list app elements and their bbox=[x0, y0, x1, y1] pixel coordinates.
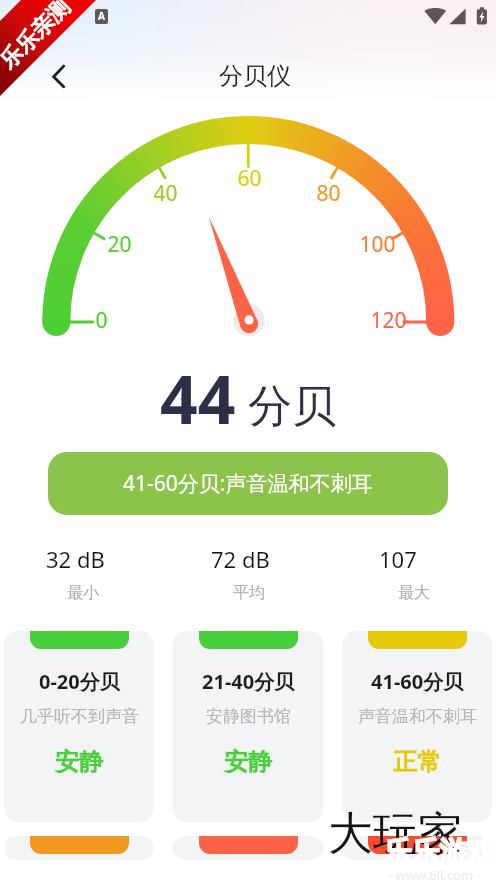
staticText: 安静 bbox=[55, 747, 103, 777]
staticText: 80 bbox=[316, 179, 341, 208]
staticText: 最小 bbox=[67, 583, 99, 603]
staticText: 大玩家 bbox=[328, 806, 463, 863]
button[interactable]: 21-40分贝 bbox=[173, 631, 323, 822]
button[interactable]: 81-100分贝 bbox=[173, 836, 323, 860]
staticText: 安静图书馆 bbox=[206, 706, 291, 727]
button[interactable]: 61-80分贝 bbox=[4, 836, 154, 860]
staticText: 60 bbox=[237, 164, 262, 193]
staticText: 107 bbox=[379, 544, 417, 574]
staticText: - www.6ll.com - bbox=[388, 866, 481, 883]
button[interactable]: 41-60分贝:声音温和不刺耳 bbox=[48, 452, 448, 515]
staticText: 41-60分贝:声音温和不刺耳 bbox=[123, 469, 373, 498]
button[interactable]: 0-20分贝 bbox=[4, 631, 154, 822]
staticText: 0 bbox=[95, 306, 108, 335]
staticText: 72 dB bbox=[211, 544, 270, 574]
staticText: 20 bbox=[107, 230, 132, 259]
staticText: 40 bbox=[153, 179, 178, 208]
staticText: 平均 bbox=[233, 583, 265, 603]
staticText: 41-60分贝 bbox=[371, 668, 464, 695]
staticText: 最大 bbox=[398, 583, 430, 603]
staticText: 分贝仪 bbox=[219, 61, 291, 91]
staticText: A bbox=[98, 9, 105, 23]
staticText: 44 bbox=[160, 353, 236, 443]
staticText: 100 bbox=[359, 230, 396, 259]
button[interactable]: Back bbox=[40, 52, 88, 100]
button[interactable]: 41-60分贝 bbox=[342, 631, 492, 822]
staticText: 21-40分贝 bbox=[202, 668, 295, 695]
staticText: 分贝 bbox=[248, 379, 336, 434]
staticText: 乐乐游戏 bbox=[383, 834, 495, 869]
staticText: 正常 bbox=[393, 747, 441, 777]
staticText: 安静 bbox=[224, 747, 272, 777]
staticText: 0-20分贝 bbox=[39, 668, 120, 695]
staticText: 120 bbox=[370, 306, 407, 335]
staticText: 乐乐游戏 bbox=[383, 834, 495, 869]
staticText: 几乎听不到声音 bbox=[20, 706, 139, 727]
staticText: 声音温和不刺耳 bbox=[358, 706, 477, 727]
button[interactable]: 101-120分贝 bbox=[342, 836, 492, 860]
staticText: 32 dB bbox=[46, 544, 105, 574]
staticText: 乐乐亲测 bbox=[0, 0, 76, 75]
